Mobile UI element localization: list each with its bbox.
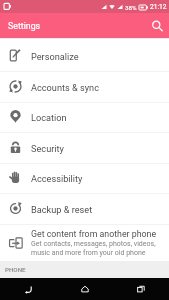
staticText: Backup & reset	[31, 204, 93, 215]
button[interactable]: Accounts & sync	[0, 72, 169, 102]
staticText: Get contacts, messages, photos, videos, …	[31, 240, 156, 257]
button[interactable]: Get content from another phone	[0, 225, 169, 261]
button[interactable]: Search	[144, 13, 169, 38]
button[interactable]: Location	[0, 103, 169, 132]
button[interactable]: Back	[11, 278, 45, 300]
staticText: 38%	[125, 4, 137, 11]
button[interactable]: Home	[68, 278, 102, 300]
staticText: Settings	[8, 21, 41, 31]
staticText: Personalize	[31, 51, 79, 62]
staticText: Get content from another phone	[31, 229, 157, 239]
staticText: Accessibility	[31, 173, 83, 184]
staticText: Accounts & sync	[31, 82, 99, 93]
button[interactable]: Backup & reset	[0, 194, 169, 224]
button[interactable]: Recents	[124, 278, 158, 300]
button[interactable]: Security	[0, 133, 169, 163]
button[interactable]: Personalize	[0, 41, 169, 71]
staticText: PHONE	[5, 266, 26, 273]
staticText: Security	[31, 143, 64, 154]
button[interactable]: Accessibility	[0, 164, 169, 193]
staticText: 21:12	[150, 3, 167, 11]
staticText: Location	[31, 112, 67, 123]
